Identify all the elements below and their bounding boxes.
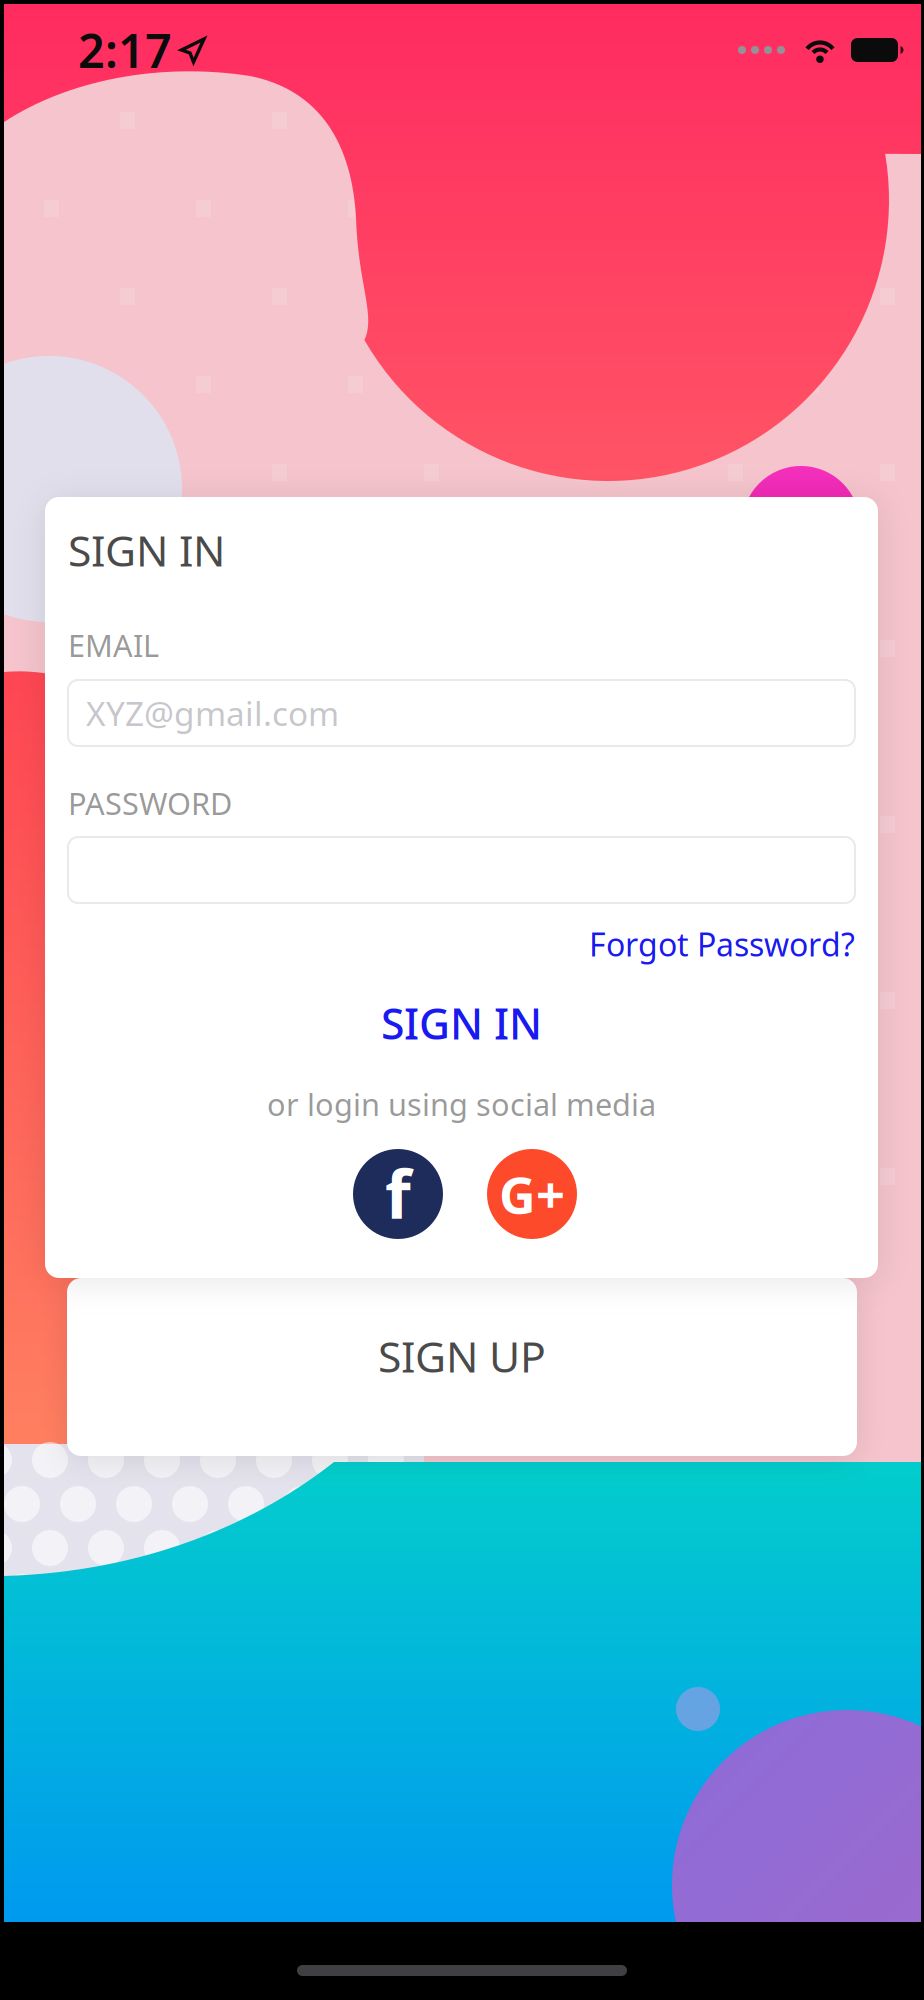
staticText: EMAIL <box>68 625 159 665</box>
button[interactable]: SIGN IN <box>68 997 855 1049</box>
staticText: f <box>385 1149 411 1237</box>
staticText: 2:17 <box>78 19 172 81</box>
staticText: PASSWORD <box>68 783 232 823</box>
button[interactable]: Forgot Password? <box>68 922 855 966</box>
staticText: Forgot Password? <box>589 923 855 965</box>
button[interactable]: Sign in with Facebook <box>353 1149 443 1239</box>
staticText: G+ <box>499 1160 565 1228</box>
staticText: or login using social media <box>267 1084 656 1124</box>
staticText: SIGN UP <box>378 1328 546 1384</box>
button[interactable]: Sign in with Google <box>487 1149 577 1239</box>
staticText: SIGN IN <box>68 522 225 578</box>
button[interactable]: SIGN UP <box>67 1278 857 1456</box>
staticText: SIGN IN <box>381 995 542 1051</box>
staticText: XYZ@gmail.com <box>86 691 339 735</box>
